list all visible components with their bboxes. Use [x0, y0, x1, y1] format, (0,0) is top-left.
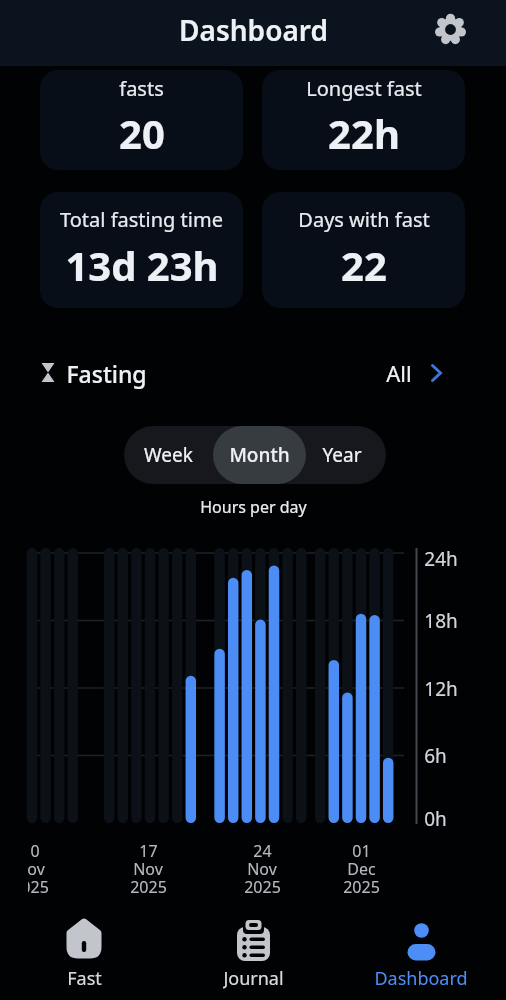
staticText: 2025 [130, 876, 167, 894]
button[interactable]: Journal [203, 908, 303, 998]
staticText: Dec [347, 858, 376, 876]
staticText: 12h [424, 676, 458, 700]
staticText: 22h [328, 106, 400, 160]
staticText: 24h [424, 546, 458, 570]
staticText: Hours per day [200, 496, 307, 518]
staticText: Dashboard [374, 966, 468, 990]
staticText: fasts [119, 75, 164, 102]
staticText: 20 [119, 106, 165, 160]
button[interactable] [432, 11, 469, 48]
staticText: Dashboard [179, 11, 328, 49]
staticText: Total fasting time [60, 206, 223, 233]
staticText: 2025 [28, 876, 49, 894]
staticText: 0h [424, 806, 447, 830]
staticText: 2025 [244, 876, 281, 894]
staticText: Fasting [66, 358, 147, 389]
staticText: Week [144, 442, 193, 468]
staticText: Nov [247, 858, 277, 876]
button[interactable]: Month [213, 426, 306, 484]
staticText: 22 [341, 238, 387, 292]
staticText: 10 [28, 840, 40, 858]
button[interactable]: Fasting [36, 356, 236, 390]
staticText: Nov [28, 858, 45, 876]
staticText: 24 [253, 840, 272, 858]
button[interactable]: Week [124, 426, 213, 484]
staticText: All [386, 358, 412, 388]
staticText: Nov [133, 858, 163, 876]
staticText: Fast [67, 966, 102, 990]
staticText: 2025 [343, 876, 380, 894]
staticText: Journal [223, 966, 284, 990]
staticText: 17 [139, 840, 158, 858]
staticText: 6h [424, 743, 447, 767]
button[interactable]: Year [306, 426, 378, 484]
button[interactable]: Dashboard [371, 908, 471, 998]
staticText: 01 [352, 840, 371, 858]
staticText: Longest fast [306, 75, 422, 102]
staticText: Days with fast [298, 206, 430, 233]
staticText: 13d 23h [65, 238, 219, 292]
staticText: Year [322, 442, 362, 468]
button[interactable]: Fast [34, 908, 134, 998]
staticText: 18h [424, 608, 458, 632]
staticText: Month [229, 442, 290, 468]
button[interactable]: All [376, 356, 456, 390]
